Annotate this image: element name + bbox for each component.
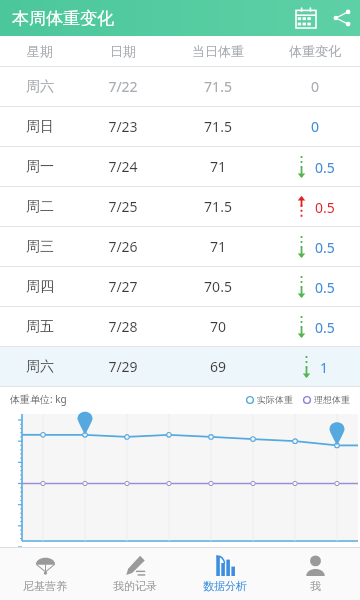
staticText: 理想体重: [314, 394, 350, 405]
staticText: 尼基营养: [23, 579, 67, 593]
staticText: 我的记录: [113, 579, 157, 593]
staticText: 7/22: [80, 77, 166, 96]
staticText: 0.5: [315, 278, 335, 297]
staticText: 70.5: [166, 277, 270, 296]
button[interactable]: 我的记录: [90, 548, 180, 600]
button[interactable]: 周四: [0, 267, 360, 307]
button[interactable]: 周五: [0, 307, 360, 347]
button[interactable]: 尼基营养: [0, 548, 90, 600]
button[interactable]: Share: [324, 0, 360, 36]
button[interactable]: 周日: [0, 107, 360, 147]
staticText: 星期: [0, 43, 80, 59]
staticText: 周日: [0, 118, 80, 136]
staticText: 1: [320, 358, 329, 377]
staticText: 数据分析: [203, 579, 247, 593]
staticText: 7/26: [80, 237, 166, 256]
staticText: 7/29: [80, 357, 166, 376]
staticText: 71.5: [166, 117, 270, 136]
staticText: 70: [166, 317, 270, 336]
staticText: 体重单位: kg: [10, 392, 67, 406]
staticText: 实际体重: [257, 394, 293, 405]
staticText: 7/28: [80, 317, 166, 336]
staticText: 本周体重变化: [12, 8, 114, 29]
button[interactable]: 周三: [0, 227, 360, 267]
staticText: 我: [310, 579, 321, 593]
staticText: 71: [166, 157, 270, 176]
button[interactable]: Calendar: [288, 0, 324, 36]
staticText: 69: [166, 357, 270, 376]
staticText: 周四: [0, 278, 80, 296]
button[interactable]: 周一: [0, 147, 360, 187]
button[interactable]: 我: [270, 548, 360, 600]
button[interactable]: 周六: [0, 67, 360, 107]
staticText: 0: [311, 77, 320, 96]
button[interactable]: 周六: [0, 347, 360, 387]
staticText: 周六: [0, 358, 80, 376]
staticText: 0: [311, 117, 320, 136]
staticText: 周六: [0, 78, 80, 96]
staticText: 日期: [80, 43, 166, 59]
staticText: 0.5: [315, 158, 335, 177]
staticText: 7/27: [80, 277, 166, 296]
staticText: 71.5: [166, 197, 270, 216]
staticText: 7/24: [80, 157, 166, 176]
button[interactable]: 数据分析: [180, 548, 270, 600]
staticText: 0.5: [315, 238, 335, 257]
staticText: 71: [166, 237, 270, 256]
staticText: 体重变化: [270, 43, 360, 59]
staticText: 周一: [0, 158, 80, 176]
staticText: 周二: [0, 198, 80, 216]
staticText: 当日体重: [166, 43, 270, 59]
staticText: 0.5: [315, 318, 335, 337]
button[interactable]: 周二: [0, 187, 360, 227]
staticText: 周五: [0, 318, 80, 336]
staticText: 7/23: [80, 117, 166, 136]
staticText: 71.5: [166, 77, 270, 96]
staticText: 7/25: [80, 197, 166, 216]
staticText: 0.5: [315, 198, 335, 217]
staticText: 周三: [0, 238, 80, 256]
